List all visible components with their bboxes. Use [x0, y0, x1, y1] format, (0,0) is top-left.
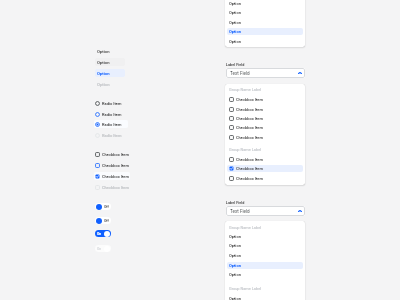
button[interactable]: Option [225, 251, 305, 260]
staticText: Checkbox Item [102, 174, 129, 179]
button[interactable]: Checkbox Item [94, 150, 130, 158]
button[interactable]: Checkbox Item [225, 105, 305, 114]
staticText: Option [229, 29, 241, 34]
staticText: Off [104, 219, 109, 223]
staticText: Checkbox Item [236, 97, 263, 102]
button[interactable]: Checkbox Item [225, 133, 305, 142]
button[interactable]: Checkbox Item [225, 95, 305, 104]
staticText: Group Name Label [229, 147, 262, 152]
button[interactable]: Option [225, 27, 305, 36]
button[interactable]: Option [225, 294, 305, 300]
staticText: Checkbox Item [236, 116, 263, 121]
staticText: Option [97, 60, 110, 65]
staticText: Checkbox Item [236, 157, 263, 162]
button[interactable]: Radio Item [94, 120, 128, 128]
staticText: Group Name Label [229, 286, 262, 291]
button[interactable]: Checkbox Item [225, 123, 305, 132]
button[interactable]: Option [95, 58, 125, 66]
button[interactable]: Toggle switch, off [95, 245, 111, 252]
other: Collapse list [298, 72, 302, 74]
button[interactable]: Toggle switch, off [95, 217, 111, 224]
button[interactable]: Option [225, 0, 305, 8]
staticText: Text Field [230, 209, 250, 214]
staticText: Option [97, 71, 110, 76]
button[interactable]: Checkbox Item [94, 172, 130, 180]
staticText: Off [104, 205, 109, 209]
staticText: Checkbox Item [102, 185, 129, 190]
staticText: Option [229, 234, 241, 239]
staticText: Group Name Label [229, 87, 262, 92]
button[interactable]: Checkbox Item [225, 155, 305, 164]
button[interactable]: Checkbox Item [225, 164, 305, 173]
button[interactable]: Option [225, 232, 305, 241]
staticText: Option [229, 20, 241, 25]
staticText: Option [229, 1, 241, 6]
button[interactable]: Checkbox Item [225, 174, 305, 183]
staticText: Checkbox Item [102, 152, 129, 157]
staticText: Label Field [226, 200, 245, 204]
staticText: Radio Item [102, 112, 122, 117]
button[interactable]: Option [225, 261, 305, 270]
button[interactable]: Option [95, 69, 125, 77]
staticText: Option [229, 10, 241, 15]
button[interactable]: Checkbox Item [225, 114, 305, 123]
staticText: Checkbox Item [236, 107, 263, 112]
button[interactable]: Option [225, 270, 305, 279]
staticText: Option [229, 39, 241, 44]
staticText: Checkbox Item [236, 135, 263, 140]
staticText: Checkbox Item [236, 176, 263, 181]
button[interactable]: Toggle switch, on [95, 230, 111, 237]
staticText: Checkbox Item [236, 166, 263, 171]
staticText: Option [229, 253, 241, 258]
staticText: Option [97, 49, 110, 54]
button[interactable]: Checkbox Item [94, 183, 130, 191]
staticText: On [97, 232, 102, 236]
button[interactable]: Option [225, 241, 305, 250]
staticText: Checkbox Item [102, 163, 129, 168]
button[interactable]: Toggle switch, off [95, 203, 111, 210]
staticText: Radio Item [102, 133, 122, 138]
staticText: On [97, 247, 102, 251]
button[interactable]: Text Field [226, 68, 305, 78]
staticText: Option [229, 296, 241, 300]
staticText: Option [229, 263, 241, 268]
button[interactable]: Radio Item [94, 99, 128, 107]
button[interactable]: Option [95, 47, 125, 55]
button[interactable]: Text Field [226, 206, 305, 216]
staticText: Option [97, 82, 110, 87]
staticText: Radio Item [102, 122, 122, 127]
button[interactable]: Option [225, 37, 305, 46]
button[interactable]: Radio Item [94, 110, 128, 118]
staticText: Text Field [230, 71, 250, 76]
button[interactable]: Option [95, 80, 125, 88]
staticText: Checkbox Item [236, 125, 263, 130]
staticText: Label Field [226, 62, 245, 66]
button[interactable]: Radio Item [94, 131, 128, 139]
staticText: Option [229, 272, 241, 277]
button[interactable]: Checkbox Item [94, 161, 130, 169]
button[interactable]: Option [225, 8, 305, 17]
staticText: Option [229, 243, 241, 248]
staticText: Radio Item [102, 101, 122, 106]
button[interactable]: Option [225, 18, 305, 27]
staticText: Group Name Label [229, 225, 262, 230]
other: Collapse list [298, 210, 302, 212]
